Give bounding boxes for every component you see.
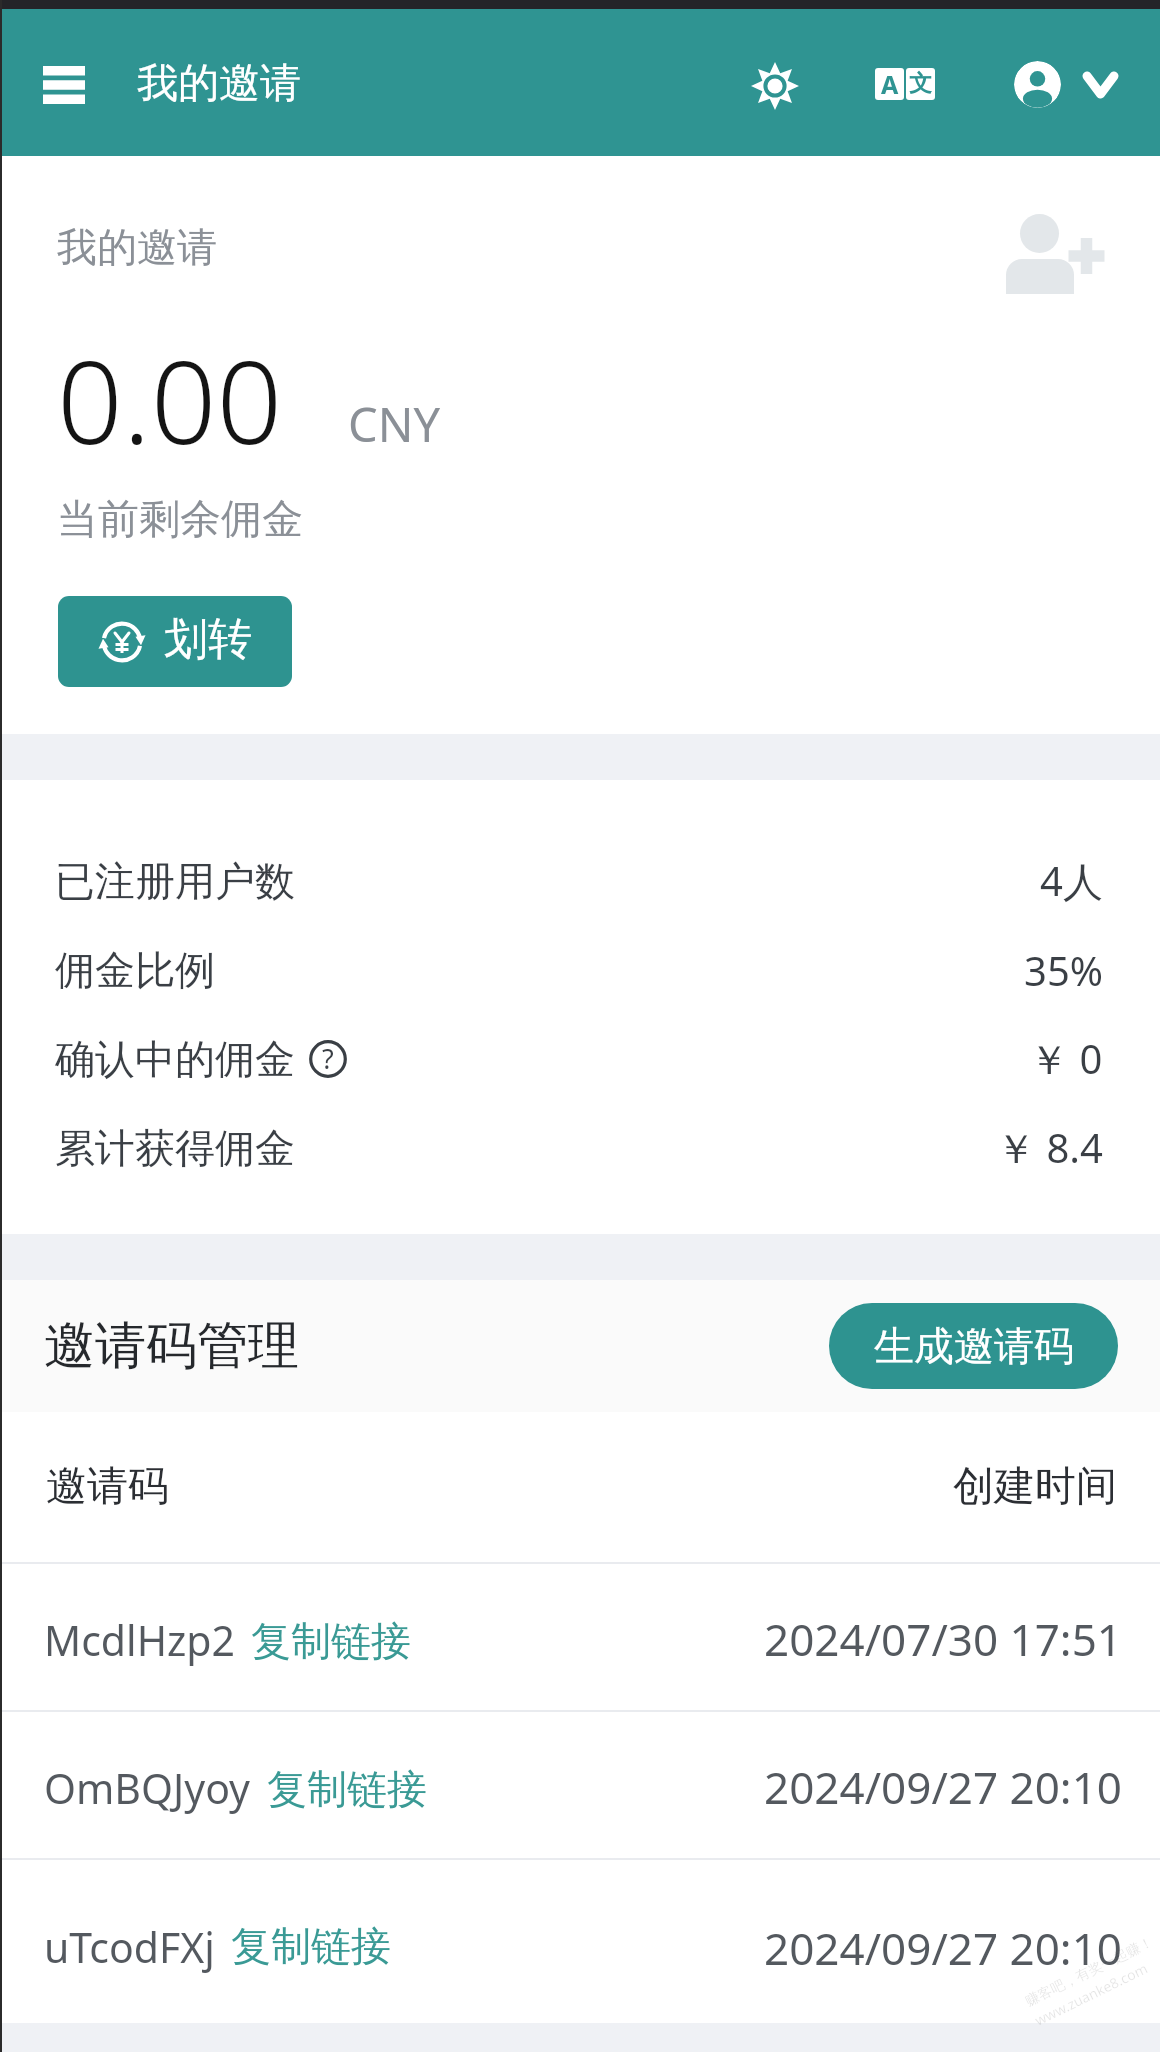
staticText: 邀请码管理 — [44, 1314, 299, 1378]
staticText: McdlHzp2 — [44, 1612, 235, 1668]
staticText: 文 — [909, 69, 932, 98]
staticText: 佣金比例 — [55, 945, 215, 995]
staticText: 累计获得佣金 — [55, 1123, 295, 1173]
button[interactable]: OmBQJyoy — [0, 1712, 1160, 1858]
staticText: 2024/07/30 17:51 — [764, 1609, 1122, 1669]
staticText: OmBQJyoy — [44, 1760, 251, 1816]
staticText: 确认中的佣金 — [55, 1034, 295, 1084]
staticText: 复制链接 — [267, 1764, 427, 1814]
button[interactable]: McdlHzp2 — [0, 1564, 1160, 1710]
staticText: ￥ 0 — [1029, 1031, 1103, 1086]
staticText: ￥ 8.4 — [996, 1120, 1103, 1175]
button[interactable]: Translate — [861, 40, 949, 128]
staticText: 划转 — [164, 612, 252, 667]
button[interactable]: uTcodFXj — [0, 1860, 1160, 2023]
button[interactable]: Invite friends — [986, 198, 1124, 310]
staticText: CNY — [348, 392, 441, 456]
staticText: 复制链接 — [231, 1921, 391, 1971]
staticText: A — [881, 68, 899, 99]
staticText: 0.00 — [57, 321, 283, 478]
staticText: 赚客吧，有奖一起赚！ — [1022, 1933, 1156, 2011]
staticText: ? — [322, 1040, 334, 1077]
staticText: 生成邀请码 — [874, 1321, 1074, 1371]
button[interactable]: Menu — [24, 49, 104, 121]
staticText: 我的邀请 — [137, 58, 301, 110]
staticText: 邀请码 — [46, 1461, 169, 1513]
button[interactable]: Account — [1006, 40, 1136, 128]
button[interactable]: 生成邀请码 — [829, 1303, 1118, 1389]
staticText: 4人 — [1040, 853, 1103, 908]
button[interactable]: Settings — [731, 42, 819, 130]
button[interactable]: 划转 — [58, 596, 292, 687]
staticText: www.zuanke8.com — [1031, 1958, 1151, 2030]
staticText: 我的邀请 — [57, 222, 217, 272]
staticText: 2024/09/27 20:10 — [764, 1757, 1122, 1817]
staticText: 35% — [1024, 943, 1103, 997]
staticText: 复制链接 — [251, 1616, 411, 1666]
staticText: 2024/09/27 20:10 — [764, 1918, 1122, 1978]
staticText: 当前剩余佣金 — [57, 494, 303, 546]
staticText: 已注册用户数 — [55, 856, 295, 906]
staticText: 创建时间 — [953, 1461, 1117, 1513]
staticText: uTcodFXj — [44, 1919, 215, 1975]
